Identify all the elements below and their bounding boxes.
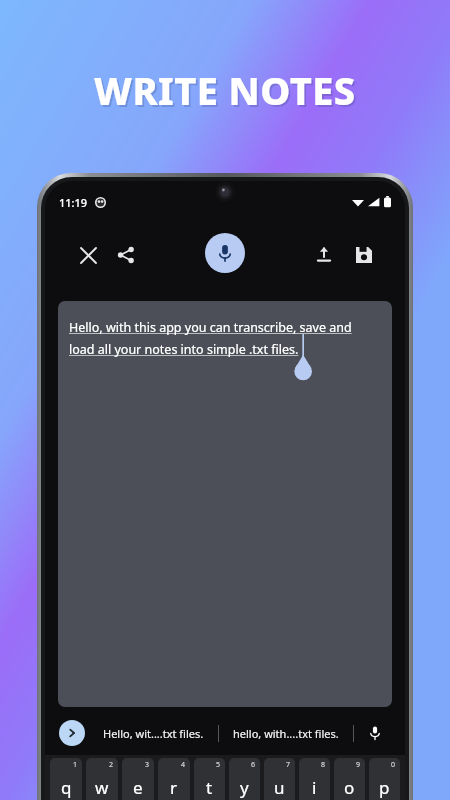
- staticText: Hello, with this app you can transcribe,…: [69, 319, 352, 336]
- staticText: y: [240, 776, 249, 799]
- staticText: o: [344, 776, 355, 799]
- staticText: 3: [145, 760, 150, 770]
- staticText: Hello, wit....txt files.: [103, 726, 204, 741]
- button[interactable]: 2: [86, 758, 118, 800]
- staticText: r: [170, 776, 178, 799]
- button[interactable]: Hello, wit....txt files.: [97, 720, 210, 747]
- button[interactable]: 5: [194, 758, 225, 800]
- staticText: 2: [109, 760, 114, 770]
- staticText: 6: [251, 760, 256, 770]
- staticText: w: [95, 776, 109, 799]
- button[interactable]: 1: [50, 758, 82, 800]
- staticText: 11:19: [59, 195, 88, 210]
- button[interactable]: 8: [299, 758, 330, 800]
- button[interactable]: hello, with....txt files.: [227, 720, 345, 747]
- button[interactable]: 7: [264, 758, 295, 800]
- button[interactable]: 9: [334, 758, 365, 800]
- staticText: WRITE NOTES: [94, 64, 356, 116]
- button[interactable]: Close: [71, 238, 105, 272]
- button[interactable]: 6: [229, 758, 260, 800]
- staticText: 9: [356, 760, 361, 770]
- staticText: q: [61, 776, 72, 799]
- staticText: hello, with....txt files.: [233, 726, 339, 741]
- button[interactable]: Record voice note: [205, 233, 245, 273]
- button[interactable]: Save note: [347, 238, 381, 272]
- button[interactable]: More suggestions: [59, 720, 85, 746]
- staticText: e: [133, 776, 143, 799]
- button[interactable]: Load note: [307, 238, 341, 272]
- staticText: 7: [286, 760, 291, 770]
- staticText: p: [379, 776, 390, 799]
- staticText: t: [206, 776, 213, 799]
- button[interactable]: 0: [369, 758, 400, 800]
- staticText: 8: [321, 760, 326, 770]
- button[interactable]: 3: [122, 758, 154, 800]
- staticText: 0: [391, 760, 396, 770]
- button[interactable]: Share: [109, 238, 143, 272]
- button[interactable]: Hello, with this app you can transcribe,…: [58, 301, 392, 707]
- staticText: i: [312, 776, 317, 799]
- staticText: WRITE NOTES: [96, 66, 358, 118]
- staticText: u: [274, 776, 285, 799]
- button[interactable]: 4: [158, 758, 190, 800]
- staticText: load all your notes into simple .txt fil…: [69, 341, 299, 358]
- staticText: 1: [73, 760, 78, 770]
- staticText: 4: [181, 760, 186, 770]
- staticText: 5: [216, 760, 221, 770]
- button[interactable]: Voice input: [361, 719, 389, 747]
